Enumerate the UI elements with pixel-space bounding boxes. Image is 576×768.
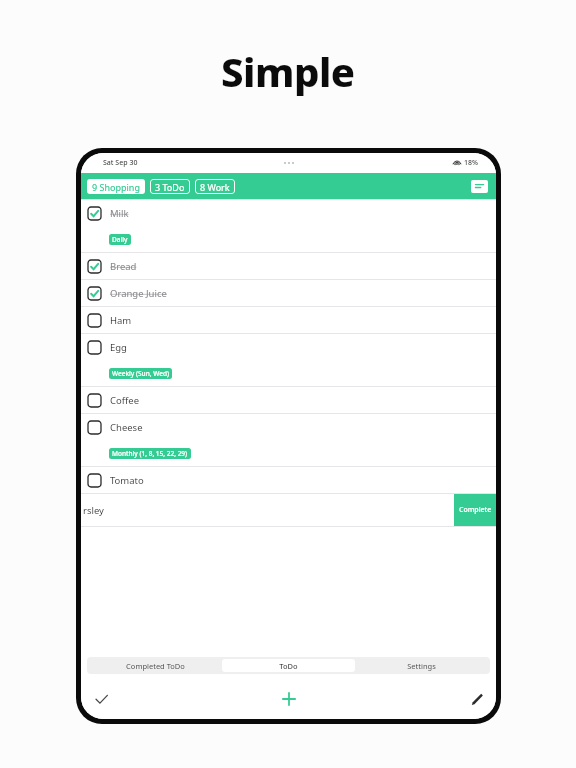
staticText: Cheese [110,421,143,434]
button[interactable]: Settings [355,659,488,672]
button[interactable]: Completed ToDo [89,659,222,672]
button[interactable]: Egg [81,333,496,386]
staticText: 18% [464,158,478,168]
staticText: Weekly (Sun, Wed) [112,369,169,378]
button[interactable]: 8 Work [195,179,235,194]
button[interactable]: ToDo [222,659,355,672]
button[interactable]: Coffee [81,386,496,413]
button[interactable]: 3 ToDo [150,179,190,194]
staticText: Bread [110,260,137,273]
button[interactable]: Complete all [89,687,113,711]
button[interactable]: Edit [464,687,488,711]
staticText: Ham [110,314,132,327]
staticText: Monthly (1, 8, 15, 22, 29) [112,449,188,458]
staticText: Simple [221,44,355,98]
staticText: 8 Work [200,181,230,193]
button[interactable]: Tomato [81,466,496,493]
staticText: 3 ToDo [155,181,185,193]
button[interactable]: Ham [81,306,496,333]
staticText: Complete [459,505,492,515]
staticText: Milk [110,207,129,220]
staticText: Settings [407,661,436,671]
button[interactable]: Cheese [81,413,496,466]
staticText: Sat Sep 30 [103,158,138,168]
staticText: Completed ToDo [126,661,185,671]
staticText: 9 Shopping [92,181,140,193]
button[interactable]: Milk [81,199,496,252]
staticText: Tomato [110,474,144,487]
staticText: Orange Juice [110,287,167,300]
button[interactable]: Reorder list [468,177,490,195]
staticText: Egg [110,341,127,354]
staticText: ToDo [279,661,298,671]
button[interactable]: Bread [81,252,496,279]
staticText: Coffee [110,394,140,407]
button[interactable]: Add task [276,686,302,712]
button[interactable]: Orange Juice [81,279,496,306]
button[interactable]: 9 Shopping [87,179,145,194]
staticText: rsley [83,504,104,517]
button[interactable]: Complete [454,494,496,526]
staticText: Daily [112,235,128,244]
